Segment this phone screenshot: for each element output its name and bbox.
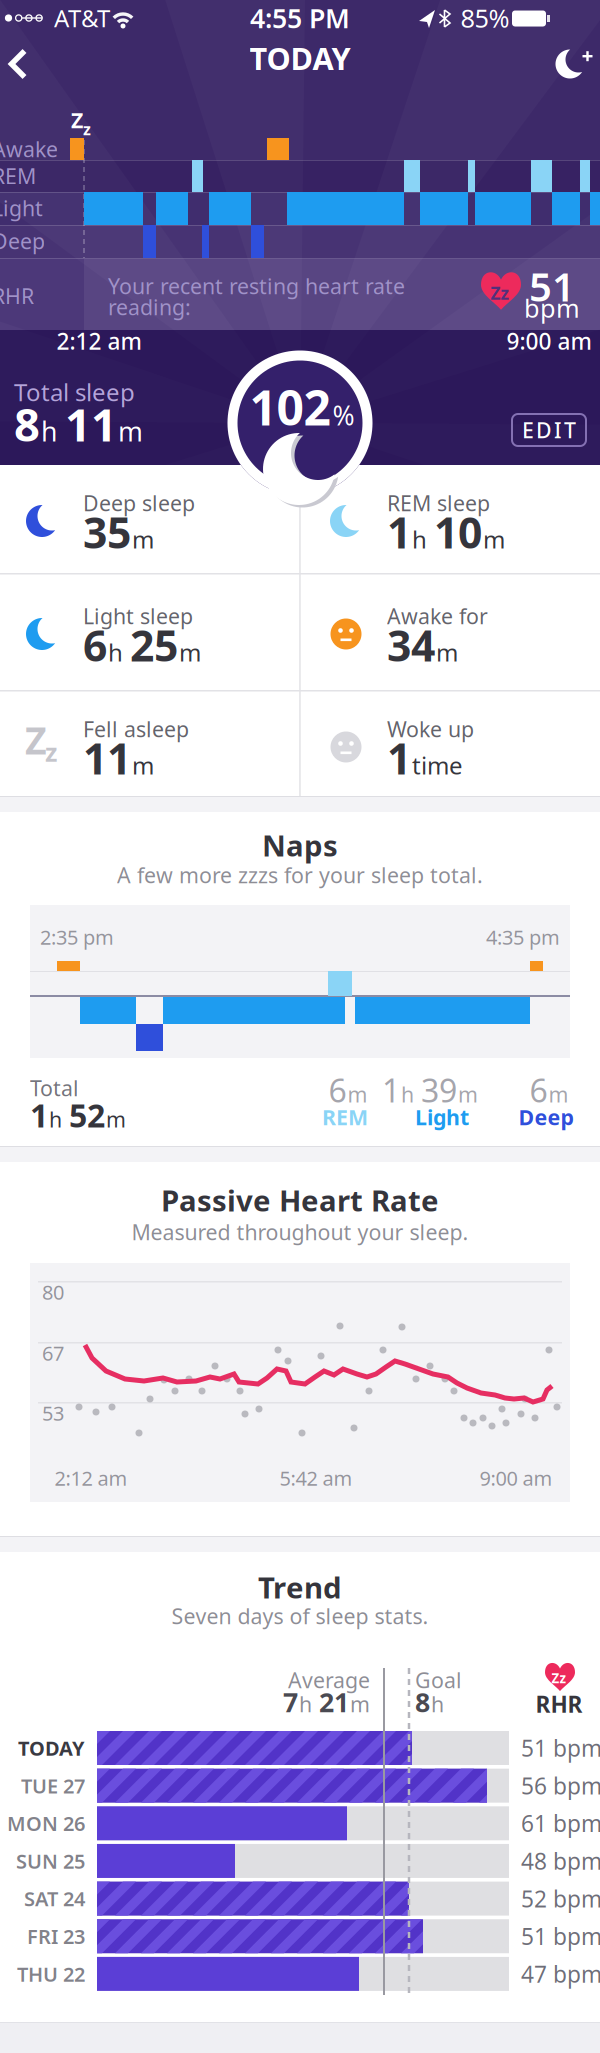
staticText: REM xyxy=(322,1103,368,1131)
staticText: h xyxy=(299,1690,318,1718)
staticText: h xyxy=(401,1080,420,1108)
staticText: 51 bpm xyxy=(521,1733,600,1763)
staticText: Zz xyxy=(551,1669,566,1687)
staticText: h xyxy=(412,523,433,555)
staticText: 6 xyxy=(83,617,107,673)
staticText: MON 26 xyxy=(7,1810,85,1837)
staticText: 2:12 am xyxy=(54,1465,127,1491)
staticText: 9:00 am xyxy=(479,1465,552,1491)
button[interactable]: Add sleep xyxy=(546,38,600,90)
staticText: m xyxy=(132,749,154,781)
staticText: 53 xyxy=(42,1400,64,1426)
staticText: 35 xyxy=(83,504,131,560)
staticText: Light sleep xyxy=(83,602,193,630)
staticText: 61 bpm xyxy=(521,1808,600,1838)
staticText: Average xyxy=(288,1666,370,1694)
staticText: Deep xyxy=(0,227,45,255)
staticText: Awake for xyxy=(387,602,488,630)
staticText: 1 xyxy=(387,730,411,786)
staticText: 5:42 am xyxy=(279,1465,352,1491)
staticText: 34 xyxy=(387,617,435,673)
staticText: Goal xyxy=(415,1666,462,1694)
staticText: 6 xyxy=(529,1069,547,1111)
staticText: 1 xyxy=(382,1069,400,1111)
staticText: time xyxy=(412,749,463,781)
staticText: m xyxy=(458,1080,478,1108)
staticText: z xyxy=(45,735,57,769)
staticText: RHR xyxy=(0,282,34,310)
staticText: m xyxy=(483,523,505,555)
staticText: 85% xyxy=(460,1,509,35)
staticText: h xyxy=(108,636,129,668)
staticText: Trend xyxy=(258,1567,342,1606)
staticText: FRI 23 xyxy=(27,1923,85,1950)
staticText: 102 xyxy=(249,375,330,439)
staticText: REM xyxy=(0,162,36,190)
staticText: 11 xyxy=(83,730,131,786)
staticText: m xyxy=(118,413,143,449)
staticText: h xyxy=(431,1690,444,1718)
staticText: 8 xyxy=(415,1684,430,1720)
staticText: Measured throughout your sleep. xyxy=(131,1218,468,1246)
staticText: Fell asleep xyxy=(83,715,189,743)
staticText: Deep sleep xyxy=(83,489,195,517)
staticText: 8 xyxy=(14,394,40,454)
staticText: AT&T xyxy=(54,2,110,34)
staticText: Light xyxy=(415,1103,469,1131)
staticText: TODAY xyxy=(18,1735,85,1761)
staticText: 56 bpm xyxy=(521,1771,600,1801)
staticText: 1 xyxy=(30,1094,48,1136)
staticText: h xyxy=(41,413,64,449)
staticText: m xyxy=(347,1080,367,1108)
staticText: TODAY xyxy=(249,38,350,78)
staticText: m xyxy=(106,1105,126,1133)
staticText: EDIT xyxy=(522,416,576,444)
staticText: 11 xyxy=(65,394,117,454)
staticText: 48 bpm xyxy=(521,1846,600,1876)
button[interactable]: Back xyxy=(0,42,40,86)
staticText: 39 xyxy=(421,1069,457,1111)
staticText: 25 xyxy=(130,617,178,673)
staticText: Deep xyxy=(518,1103,573,1131)
staticText: Total sleep xyxy=(14,376,135,408)
staticText: 4:35 pm xyxy=(486,924,560,950)
staticText: reading: xyxy=(108,293,191,321)
staticText: Woke up xyxy=(387,715,474,743)
staticText: Z xyxy=(71,106,83,134)
staticText: m xyxy=(548,1080,568,1108)
button[interactable]: EDIT xyxy=(512,414,586,446)
staticText: Light xyxy=(0,194,43,222)
staticText: 80 xyxy=(42,1279,64,1305)
staticText: 51 bpm xyxy=(521,1921,600,1951)
staticText: A few more zzzs for your sleep total. xyxy=(117,861,483,889)
staticText: RHR xyxy=(535,1689,582,1719)
staticText: 4:55 PM xyxy=(250,0,350,36)
staticText: m xyxy=(350,1690,370,1718)
staticText: h xyxy=(49,1105,68,1133)
staticText: 7 xyxy=(283,1684,298,1720)
staticText: Naps xyxy=(262,825,338,864)
staticText: m xyxy=(132,523,154,555)
staticText: Awake xyxy=(0,135,58,163)
staticText: 21 xyxy=(319,1684,349,1720)
staticText: 9:00 am xyxy=(506,326,591,356)
staticText: SAT 24 xyxy=(24,1885,85,1912)
staticText: Total xyxy=(30,1074,79,1102)
staticText: m xyxy=(436,636,458,668)
staticText: 52 bpm xyxy=(521,1883,600,1914)
staticText: SUN 25 xyxy=(16,1848,85,1874)
staticText: REM sleep xyxy=(387,489,490,517)
staticText: 2:35 pm xyxy=(40,924,114,950)
staticText: Seven days of sleep stats. xyxy=(171,1602,428,1630)
staticText: Z xyxy=(25,715,47,765)
staticText: Zz xyxy=(490,281,509,304)
staticText: m xyxy=(179,636,201,668)
staticText: 47 bpm xyxy=(521,1959,600,1989)
staticText: % xyxy=(332,398,354,433)
staticText: z xyxy=(83,118,91,140)
staticText: THU 22 xyxy=(17,1961,85,1987)
staticText: 10 xyxy=(434,504,482,560)
staticText: bpm xyxy=(524,291,580,325)
staticText: 6 xyxy=(328,1069,346,1111)
staticText: 1 xyxy=(387,504,411,560)
